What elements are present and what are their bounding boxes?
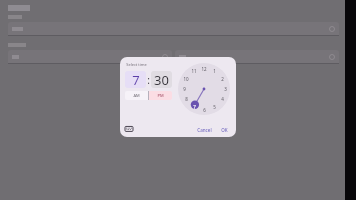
staticText: 11 [191,68,197,74]
button[interactable]: Clear [175,50,339,63]
button[interactable]: AM [125,91,148,100]
staticText: 12 [201,66,207,72]
staticText: Select time [126,62,147,67]
button[interactable]: PM [149,91,172,100]
staticText: 7 [132,71,140,88]
staticText: 10 [183,76,189,82]
button[interactable]: Cancel [194,126,215,134]
staticText: OK [221,127,228,133]
button[interactable]: 7 [125,71,146,88]
staticText: 6 [203,107,206,113]
staticText: 3 [224,86,227,92]
staticText: 1 [213,68,216,74]
staticText: 2 [221,76,224,82]
staticText: 30 [154,71,169,88]
staticText: AM [133,93,140,98]
button[interactable]: Clear [8,50,172,63]
staticText: Cancel [197,127,212,133]
staticText: 5 [213,104,216,110]
button[interactable]: Clear [329,54,335,60]
staticText: 4 [221,96,224,102]
button[interactable]: Clear [162,54,168,60]
button[interactable]: 30 [151,71,172,88]
button[interactable]: OK [218,126,231,134]
button[interactable]: Clock dial [178,63,230,115]
button[interactable]: Clear [329,26,335,32]
staticText: 9 [183,86,186,92]
staticText: : [147,73,150,87]
staticText: PM [157,93,164,98]
staticText: 7 [193,104,196,110]
staticText: 8 [185,96,188,102]
button[interactable]: Switch to text input [125,125,133,133]
